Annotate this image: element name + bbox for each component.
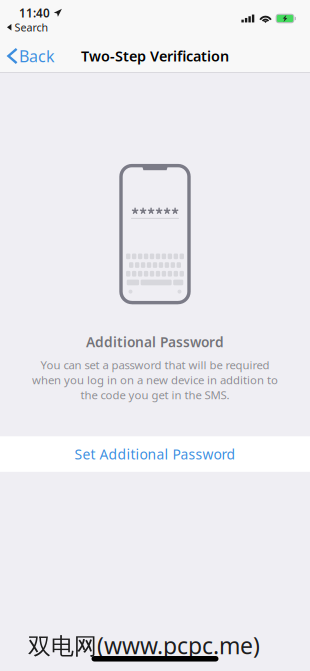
staticText: when you log in on a new device in addit… <box>32 372 278 387</box>
staticText: You can set a password that will be requ… <box>40 357 269 372</box>
staticText: Back <box>19 45 55 67</box>
staticText: Search <box>14 20 48 34</box>
button[interactable]: Set Additional Password <box>0 436 310 472</box>
staticText: the code you get in the SMS. <box>80 387 229 402</box>
button[interactable]: Back <box>0 40 63 72</box>
staticText: 双电网(www.pcpc.me) <box>28 630 260 661</box>
staticText: Additional Password <box>86 333 224 351</box>
button[interactable]: Search <box>0 0 48 34</box>
staticText: 11:40 <box>19 5 50 21</box>
staticText: Two-Step Verification <box>81 46 229 66</box>
staticText: Set Additional Password <box>74 445 235 463</box>
